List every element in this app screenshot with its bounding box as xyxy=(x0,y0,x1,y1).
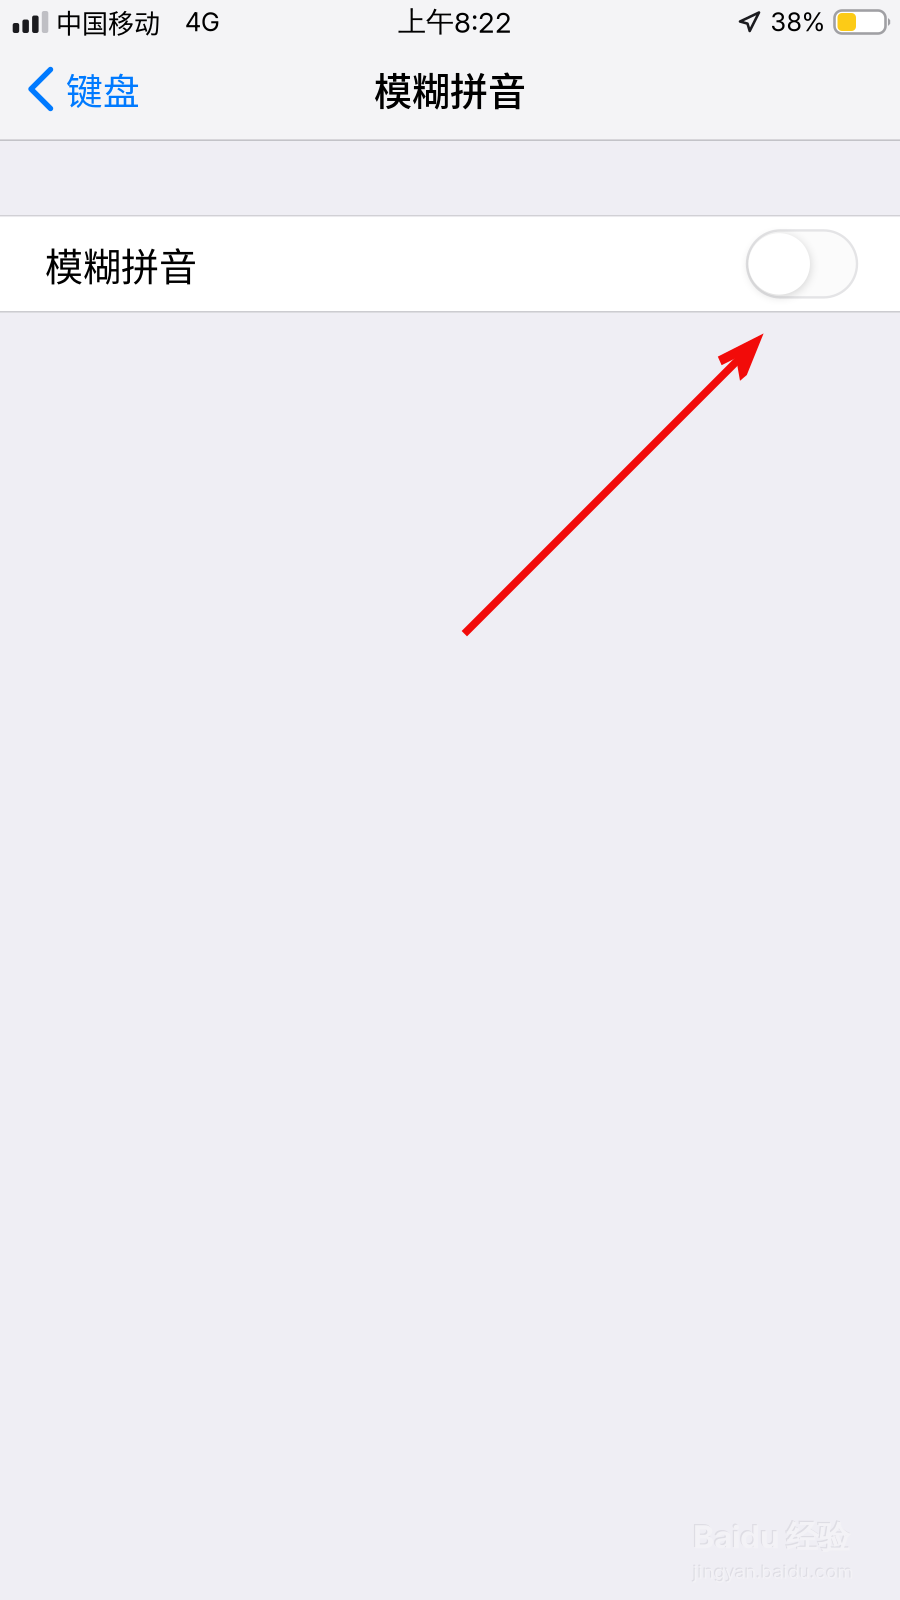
button[interactable]: 模糊拼音, 关 xyxy=(0,215,900,312)
staticText: 38% xyxy=(770,7,825,37)
staticText: Baidu 经验 xyxy=(693,1517,850,1558)
staticText: 4G xyxy=(185,7,220,37)
staticText: 上午8:22 xyxy=(398,4,512,40)
staticText: 模糊拼音 xyxy=(374,61,526,116)
staticText: jingyan.baidu.com xyxy=(692,1559,852,1582)
staticText: Baidu 经验 xyxy=(692,1516,849,1556)
staticText: 模糊拼音 xyxy=(45,236,197,291)
button[interactable]: 键盘 xyxy=(16,54,152,124)
staticText: jingyan.baidu.com xyxy=(693,1561,853,1583)
staticText: 键盘 xyxy=(66,62,140,116)
staticText: 中国移动 xyxy=(56,3,160,41)
